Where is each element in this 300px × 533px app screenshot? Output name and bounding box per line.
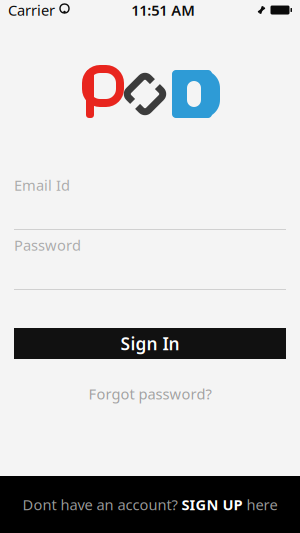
staticText: SIGN UP: [181, 495, 242, 514]
staticText: Sign In: [120, 332, 179, 355]
staticText: 11:51 AM: [131, 0, 195, 20]
staticText: Dont have an account?: [22, 495, 181, 514]
staticText: Password: [14, 235, 81, 255]
staticText: Forgot password?: [88, 384, 211, 403]
staticText: Carrier: [8, 0, 55, 20]
button[interactable]: Dont have an account?: [0, 476, 300, 533]
button[interactable]: Forgot password?: [78, 378, 221, 409]
staticText: Email Id: [14, 175, 70, 195]
button[interactable]: Sign In: [14, 328, 286, 359]
staticText: here: [242, 495, 277, 514]
